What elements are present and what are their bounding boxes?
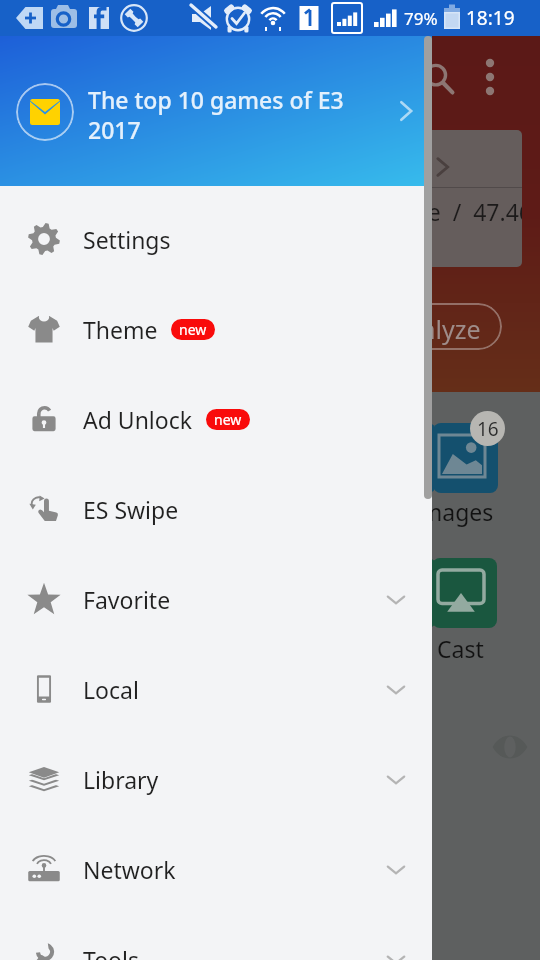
other: Open article [393,98,419,124]
button[interactable]: Theme [0,284,432,374]
other: More options [482,58,498,96]
staticText: 16 [477,416,499,442]
staticText: Theme [83,314,158,345]
staticText: Tools [83,944,139,960]
staticText: Library [83,764,159,795]
button[interactable]: Settings [0,194,432,284]
button[interactable]: Local [0,644,432,734]
staticText: Analyze [390,312,481,346]
button[interactable]: Library [0,734,432,824]
staticText: Internal Storage / 47.46 GB [265,196,522,227]
staticText: Cast [437,633,484,664]
staticText: Ad Unlock [83,404,193,435]
staticText: Settings [83,224,171,255]
button[interactable]: Network [0,824,432,914]
staticText: Favorite [83,584,171,615]
staticText: 18:19 [466,5,515,31]
staticText: The top 10 games of E3 2017 [88,84,350,146]
button[interactable]: Analyze [240,303,502,350]
other: Show hidden [492,731,528,763]
staticText: ES Swipe [83,494,179,525]
staticText: Network [83,854,176,885]
staticText: 79% [404,7,438,30]
staticText: new [214,410,242,429]
button[interactable]: ES Swipe [0,464,432,554]
other: Search [420,60,456,96]
staticText: Images [413,496,494,527]
button[interactable]: Tools [0,914,432,960]
staticText: Local [83,674,139,705]
button[interactable]: Ad Unlock [0,374,432,464]
staticText: new [179,320,207,339]
button[interactable]: The top 10 games of E3 2017 [0,36,432,186]
button[interactable]: Favorite [0,554,432,644]
